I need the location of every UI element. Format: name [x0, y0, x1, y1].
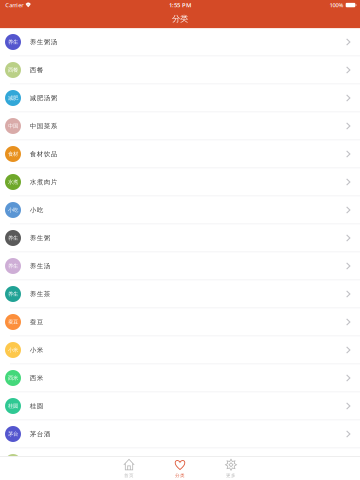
- staticText: 养生茶: [30, 290, 51, 298]
- staticText: 养生粥: [30, 234, 51, 242]
- staticText: 养生: [8, 235, 18, 241]
- staticText: 小米: [30, 346, 44, 354]
- staticText: 养生: [8, 39, 18, 45]
- staticText: 桂圆: [8, 403, 18, 409]
- button[interactable]: 小吃: [0, 196, 360, 224]
- button[interactable]: 食材: [0, 140, 360, 168]
- button[interactable]: 养生: [0, 280, 360, 308]
- staticText: 小吃: [30, 206, 44, 214]
- staticText: 养生: [8, 291, 18, 297]
- staticText: 西米: [30, 374, 44, 382]
- staticText: 养生粥汤: [30, 38, 58, 46]
- staticText: 蚕豆: [8, 319, 18, 325]
- staticText: 中国菜系: [30, 122, 58, 130]
- button[interactable]: 养生: [0, 252, 360, 280]
- button[interactable]: 更多: [211, 456, 251, 480]
- staticText: 中国: [8, 123, 18, 129]
- button[interactable]: 小米: [0, 336, 360, 364]
- button[interactable]: 分类: [160, 456, 200, 480]
- staticText: 养生汤: [30, 262, 51, 270]
- staticText: 茅台: [8, 431, 18, 437]
- staticText: 小吃: [8, 207, 18, 213]
- button[interactable]: 养生: [0, 224, 360, 252]
- staticText: 养生: [8, 263, 18, 269]
- button[interactable]: 西餐: [0, 56, 360, 84]
- button[interactable]: 养生: [0, 28, 360, 56]
- staticText: 西餐: [30, 66, 44, 74]
- staticText: Carrier: [5, 1, 23, 9]
- staticText: 减肥汤粥: [30, 94, 58, 102]
- button[interactable]: 蚕豆: [0, 308, 360, 336]
- staticText: 分类: [175, 473, 185, 478]
- staticText: 减肥: [8, 95, 18, 101]
- staticText: 水煮肉片: [30, 178, 58, 186]
- staticText: 食材: [8, 151, 18, 157]
- button[interactable]: 茅台: [0, 420, 360, 448]
- button[interactable]: 水煮: [0, 168, 360, 196]
- staticText: 西餐: [8, 67, 18, 73]
- staticText: 茅台酒: [30, 430, 51, 438]
- staticText: 蚕豆: [30, 318, 44, 326]
- staticText: 西米: [8, 375, 18, 381]
- staticText: 食材饮品: [30, 150, 58, 158]
- staticText: 水煮: [8, 179, 18, 185]
- staticText: 小米: [8, 347, 18, 353]
- button[interactable]: 西米: [0, 364, 360, 392]
- staticText: 1:55 PM: [169, 1, 191, 9]
- staticText: 分类: [172, 14, 188, 24]
- button[interactable]: 中国: [0, 112, 360, 140]
- staticText: 更多: [226, 473, 236, 478]
- staticText: 首页: [124, 473, 134, 478]
- button[interactable]: 减肥: [0, 84, 360, 112]
- button[interactable]: 桂圆: [0, 392, 360, 420]
- button[interactable]: 首页: [109, 456, 149, 480]
- button[interactable]: 白酒: [0, 448, 360, 476]
- staticText: 桂圆: [30, 402, 44, 410]
- staticText: 100%: [329, 1, 343, 9]
